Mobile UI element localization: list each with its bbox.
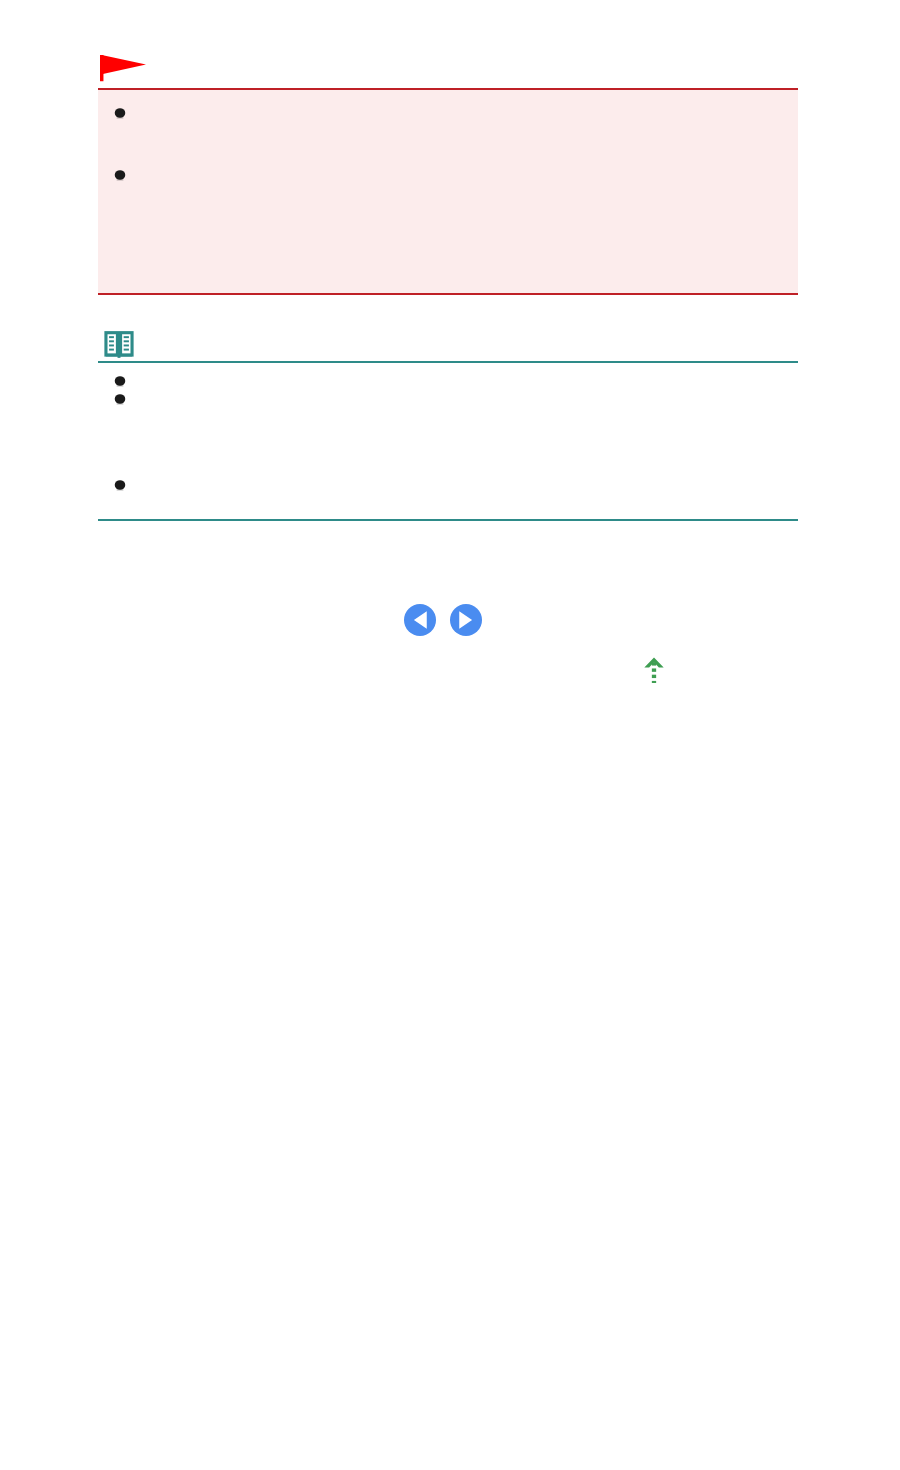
other: Note (104, 331, 134, 359)
button[interactable]: Page top (643, 657, 665, 683)
button[interactable]: Previous page (404, 604, 436, 636)
button[interactable]: Next page (450, 604, 482, 636)
other: Important (100, 55, 146, 87)
